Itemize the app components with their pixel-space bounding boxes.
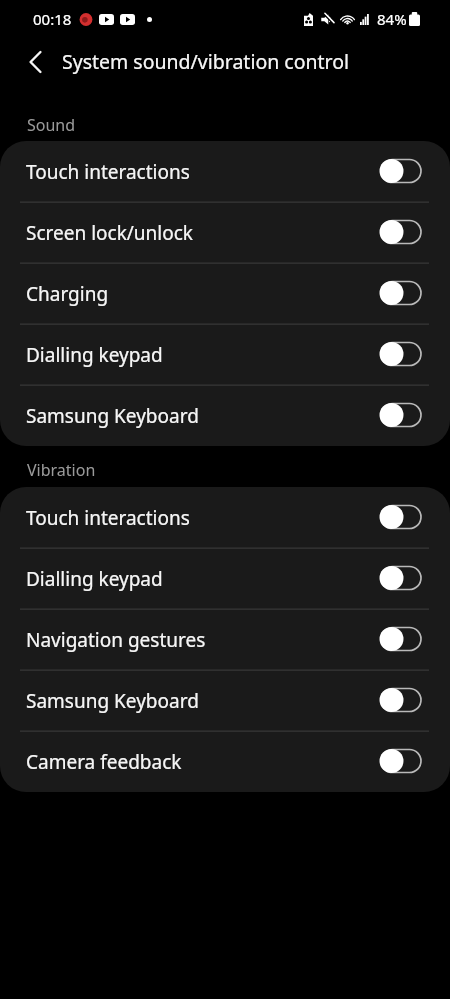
button[interactable]: Camera feedback — [0, 731, 450, 792]
button[interactable]: Touch interactions — [0, 487, 450, 548]
button[interactable]: Samsung Keyboard — [0, 385, 450, 446]
button[interactable]: Back — [14, 41, 54, 81]
button[interactable]: Screen lock/unlock — [0, 202, 450, 263]
staticText: Samsung Keyboard — [26, 403, 379, 429]
staticText: Vibration — [27, 459, 96, 481]
staticText: Samsung Keyboard — [26, 688, 379, 714]
staticText: Screen lock/unlock — [26, 220, 379, 246]
staticText: Charging — [26, 281, 379, 307]
button[interactable]: Navigation gestures — [0, 609, 450, 670]
staticText: Dialling keypad — [26, 566, 379, 592]
staticText: Touch interactions — [26, 505, 379, 531]
button[interactable]: Charging — [0, 263, 450, 324]
staticText: 84% — [377, 9, 407, 29]
staticText: 00:18 — [33, 9, 72, 29]
button[interactable]: Dialling keypad — [0, 324, 450, 385]
staticText: Sound — [27, 114, 76, 136]
button[interactable]: Dialling keypad — [0, 548, 450, 609]
staticText: Navigation gestures — [26, 627, 379, 653]
staticText: Camera feedback — [26, 749, 379, 775]
button[interactable]: Samsung Keyboard — [0, 670, 450, 731]
staticText: Dialling keypad — [26, 342, 379, 368]
staticText: System sound/vibration control — [62, 48, 350, 75]
button[interactable]: Touch interactions — [0, 141, 450, 202]
staticText: Touch interactions — [26, 159, 379, 185]
